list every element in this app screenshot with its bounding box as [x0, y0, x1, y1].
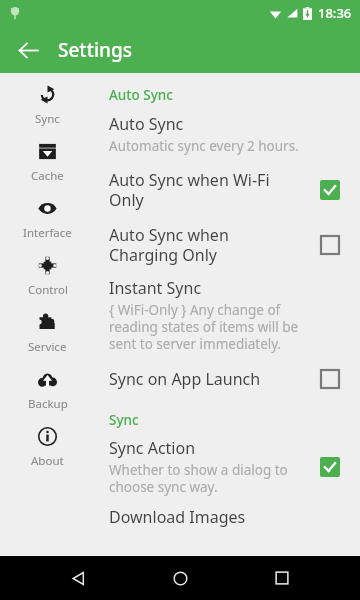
- button[interactable]: Toggle: [316, 365, 344, 393]
- button[interactable]: Toggle: [316, 176, 344, 204]
- staticText: Sync on App Launch: [109, 368, 261, 390]
- button[interactable]: Sync Action: [109, 437, 350, 496]
- staticText: Interface: [23, 225, 72, 241]
- staticText: 18:36: [318, 4, 352, 22]
- button[interactable]: Service: [0, 313, 95, 370]
- staticText: About: [31, 453, 64, 469]
- button[interactable]: Auto Sync: [109, 113, 350, 155]
- button[interactable]: Auto Sync when Wi-Fi Only: [109, 169, 350, 210]
- button[interactable]: Sync: [0, 85, 95, 142]
- staticText: Auto Sync when Wi-Fi Only: [109, 169, 300, 210]
- staticText: Auto Sync: [109, 86, 350, 104]
- button[interactable]: Toggle: [316, 453, 344, 481]
- staticText: Automatic sync every 2 hours.: [109, 137, 299, 155]
- button[interactable]: Back: [8, 30, 48, 70]
- staticText: Auto Sync when Charging Only: [109, 224, 300, 265]
- button[interactable]: Control: [0, 256, 95, 313]
- button[interactable]: Interface: [0, 199, 95, 256]
- staticText: Control: [28, 282, 68, 298]
- button[interactable]: Back: [54, 556, 102, 600]
- staticText: Auto Sync: [109, 113, 184, 135]
- button[interactable]: Sync on App Launch: [109, 365, 350, 393]
- button[interactable]: Recent apps: [258, 556, 306, 600]
- staticText: Sync: [109, 411, 350, 429]
- button[interactable]: Backup: [0, 370, 95, 427]
- staticText: Download Images: [109, 506, 246, 528]
- staticText: Whether to show a dialog to choose sync …: [109, 461, 300, 496]
- staticText: { WiFi-Only } Any change of reading stat…: [109, 301, 300, 353]
- staticText: Sync Action: [109, 437, 196, 459]
- button[interactable]: Toggle: [316, 231, 344, 259]
- button[interactable]: About: [0, 427, 95, 484]
- button[interactable]: Home: [156, 556, 204, 600]
- staticText: Cache: [31, 168, 64, 184]
- button[interactable]: Instant Sync: [109, 277, 350, 353]
- staticText: Backup: [28, 396, 68, 412]
- staticText: Service: [28, 339, 67, 355]
- staticText: Sync: [35, 111, 60, 127]
- staticText: Settings: [58, 37, 132, 63]
- button[interactable]: Auto Sync when Charging Only: [109, 224, 350, 265]
- button[interactable]: Cache: [0, 142, 95, 199]
- staticText: Instant Sync: [109, 277, 202, 299]
